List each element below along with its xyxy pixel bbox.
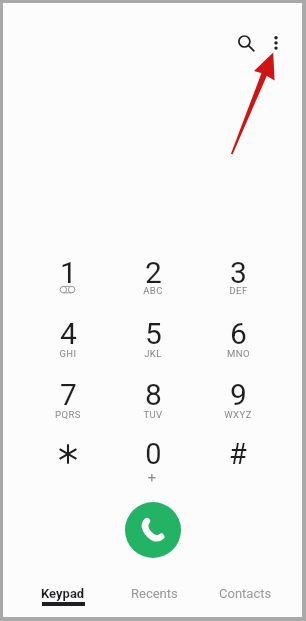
staticText: ABC [143, 285, 163, 296]
button[interactable] [111, 372, 195, 426]
staticText: JKL [144, 348, 162, 359]
staticText: 3 [230, 255, 247, 290]
button[interactable] [196, 431, 280, 485]
staticText: 4 [60, 316, 77, 351]
staticText: Recents [131, 586, 178, 601]
button[interactable]: Recents [109, 577, 199, 615]
button[interactable] [196, 249, 280, 303]
button[interactable] [26, 310, 110, 364]
staticText: Keypad [41, 586, 85, 601]
staticText: MNO [227, 348, 250, 359]
staticText: 5 [145, 316, 162, 351]
button[interactable] [26, 372, 110, 426]
button[interactable] [196, 372, 280, 426]
staticText: # [229, 437, 247, 471]
staticText: WXYZ [224, 409, 252, 420]
button[interactable]: More options [261, 26, 291, 60]
staticText: TUV [143, 409, 163, 420]
staticText: 7 [60, 377, 77, 412]
staticText: GHI [59, 348, 77, 359]
staticText: 2 [145, 255, 162, 290]
staticText: 1 [60, 255, 77, 290]
button[interactable] [26, 431, 110, 485]
staticText: 9 [230, 377, 247, 412]
staticText: 6 [230, 316, 247, 351]
button[interactable]: Contacts [200, 577, 290, 615]
staticText: Contacts [219, 586, 272, 601]
button[interactable] [111, 431, 195, 485]
button[interactable] [196, 310, 280, 364]
staticText: 0 [145, 437, 162, 471]
button[interactable]: Keypad [18, 577, 108, 615]
button[interactable]: Call [125, 502, 181, 558]
button[interactable] [111, 249, 195, 303]
button[interactable]: Search [229, 26, 260, 57]
button[interactable] [111, 310, 195, 364]
staticText: PQRS [55, 409, 81, 420]
button[interactable] [26, 249, 110, 303]
staticText: 8 [145, 377, 162, 412]
staticText: DEF [229, 285, 248, 296]
